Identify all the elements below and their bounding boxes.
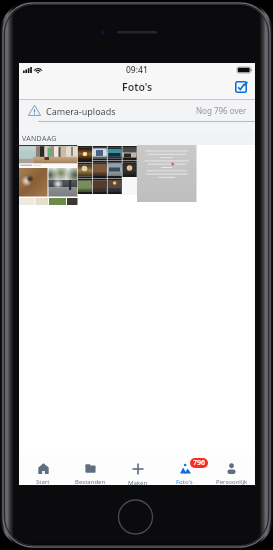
button[interactable]: Camera-uploads (19, 100, 255, 132)
button[interactable]: Selecteren (235, 81, 247, 93)
staticText: VANDAAG (22, 134, 57, 144)
staticText: Nog 796 over (196, 105, 247, 116)
staticText: 09:41 (126, 64, 148, 76)
staticText: Camera-uploads (46, 105, 116, 117)
staticText: Foto's (122, 80, 153, 94)
button[interactable] (19, 145, 255, 205)
button[interactable]: Bestanden (67, 455, 114, 485)
staticText: Start (36, 478, 50, 485)
button[interactable]: Maken (114, 455, 161, 485)
button[interactable]: 796 (161, 455, 208, 485)
button[interactable]: Start (19, 455, 67, 485)
staticText: Maken (128, 479, 148, 485)
staticText: Persoonlijk (216, 478, 248, 485)
staticText: Bestanden (75, 478, 106, 485)
staticText: Foto's (176, 478, 193, 485)
button[interactable]: Persoonlijk (208, 455, 255, 485)
staticText: 796 (193, 458, 206, 468)
